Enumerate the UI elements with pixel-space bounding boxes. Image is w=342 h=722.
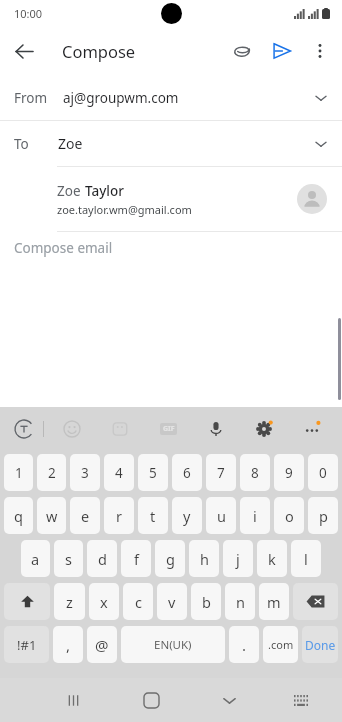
button[interactable]: Shift	[4, 583, 50, 620]
button[interactable]: 8	[240, 454, 270, 491]
button[interactable]: s	[54, 540, 83, 577]
staticText: 4	[115, 464, 123, 482]
staticText: a	[31, 549, 40, 569]
staticText: 9	[285, 464, 293, 482]
staticText: s	[65, 549, 72, 569]
button[interactable]: Text translate	[10, 415, 38, 443]
staticText: o	[285, 506, 294, 526]
button[interactable]: .com	[263, 626, 298, 663]
button[interactable]: Home	[134, 683, 168, 717]
button[interactable]: Hide keyboard	[212, 683, 246, 717]
staticText: aj@groupwm.com	[63, 89, 179, 107]
button[interactable]: 6	[172, 454, 202, 491]
button[interactable]: 7	[206, 454, 236, 491]
button[interactable]: Attach file	[222, 31, 262, 71]
button[interactable]: l	[291, 540, 321, 577]
staticText: y	[183, 506, 191, 526]
button[interactable]: z	[54, 583, 85, 620]
button[interactable]: 1	[4, 454, 33, 491]
button[interactable]: i	[240, 497, 270, 534]
button[interactable]: a	[21, 540, 50, 577]
button[interactable]: From	[0, 75, 342, 120]
staticText: h	[200, 549, 209, 569]
button[interactable]: h	[189, 540, 219, 577]
button[interactable]: p	[308, 497, 338, 534]
button[interactable]: k	[257, 540, 287, 577]
staticText: t	[150, 506, 156, 526]
button[interactable]: More keyboard options	[298, 415, 326, 443]
staticText: b	[202, 592, 211, 612]
staticText: p	[319, 506, 328, 526]
staticText: Compose email	[14, 239, 113, 257]
staticText: u	[217, 506, 226, 526]
button[interactable]: @	[87, 626, 117, 663]
staticText: ,	[66, 635, 71, 655]
button[interactable]: y	[172, 497, 202, 534]
button[interactable]: 4	[104, 454, 134, 491]
button[interactable]: ,	[53, 626, 83, 663]
button[interactable]: To	[0, 121, 342, 166]
staticText: m	[267, 592, 281, 612]
staticText: Zoe	[57, 182, 85, 200]
button[interactable]: .	[229, 626, 259, 663]
staticText: 10:00	[14, 6, 43, 21]
button[interactable]: v	[157, 583, 187, 620]
button[interactable]: j	[223, 540, 253, 577]
button[interactable]: Send	[262, 31, 302, 71]
button[interactable]: r	[104, 497, 134, 534]
button[interactable]: f	[121, 540, 151, 577]
staticText: i	[253, 506, 257, 526]
staticText: w	[46, 506, 58, 526]
staticText: 3	[81, 464, 89, 482]
staticText: x	[100, 592, 108, 612]
button[interactable]: Switch keyboard	[284, 683, 318, 717]
button[interactable]: g	[155, 540, 185, 577]
button[interactable]: u	[206, 497, 236, 534]
button[interactable]: Back	[6, 33, 42, 69]
button[interactable]: 9	[274, 454, 304, 491]
staticText: Done	[305, 637, 336, 653]
button[interactable]: 2	[37, 454, 66, 491]
staticText: 8	[251, 464, 259, 482]
button[interactable]: m	[259, 583, 289, 620]
button[interactable]: GIF	[154, 415, 182, 443]
staticText: To	[14, 135, 29, 153]
staticText: 6	[183, 464, 191, 482]
staticText: Taylor	[85, 182, 124, 200]
staticText: d	[98, 549, 107, 569]
button[interactable]: w	[37, 497, 66, 534]
button[interactable]: 5	[138, 454, 168, 491]
button[interactable]: Done	[302, 626, 338, 663]
button[interactable]: Zoe	[0, 167, 342, 231]
staticText: EN(UK)	[154, 637, 192, 653]
button[interactable]: b	[191, 583, 221, 620]
staticText: z	[66, 592, 73, 612]
button[interactable]: Emoji	[58, 415, 86, 443]
staticText: 2	[48, 464, 56, 482]
staticText: l	[304, 549, 308, 569]
button[interactable]: More options	[302, 31, 338, 71]
staticText: q	[14, 506, 23, 526]
button[interactable]: Backspace	[293, 583, 338, 620]
button[interactable]: Space	[121, 626, 225, 663]
staticText: v	[168, 592, 176, 612]
button[interactable]: 3	[70, 454, 100, 491]
staticText: k	[268, 549, 276, 569]
button[interactable]: e	[70, 497, 100, 534]
button[interactable]: Settings	[250, 415, 278, 443]
button[interactable]: c	[123, 583, 153, 620]
button[interactable]: q	[4, 497, 33, 534]
staticText: r	[116, 506, 122, 526]
button[interactable]: x	[89, 583, 119, 620]
button[interactable]: Voice input	[202, 415, 230, 443]
button[interactable]: t	[138, 497, 168, 534]
button[interactable]: Recents	[56, 683, 90, 717]
button[interactable]: !#1	[4, 626, 49, 663]
button[interactable]: o	[274, 497, 304, 534]
button[interactable]: n	[225, 583, 255, 620]
button[interactable]: 0	[308, 454, 338, 491]
staticText: 0	[319, 464, 327, 482]
button[interactable]: d	[87, 540, 117, 577]
staticText: j	[236, 549, 240, 569]
button[interactable]: Stickers	[106, 415, 134, 443]
